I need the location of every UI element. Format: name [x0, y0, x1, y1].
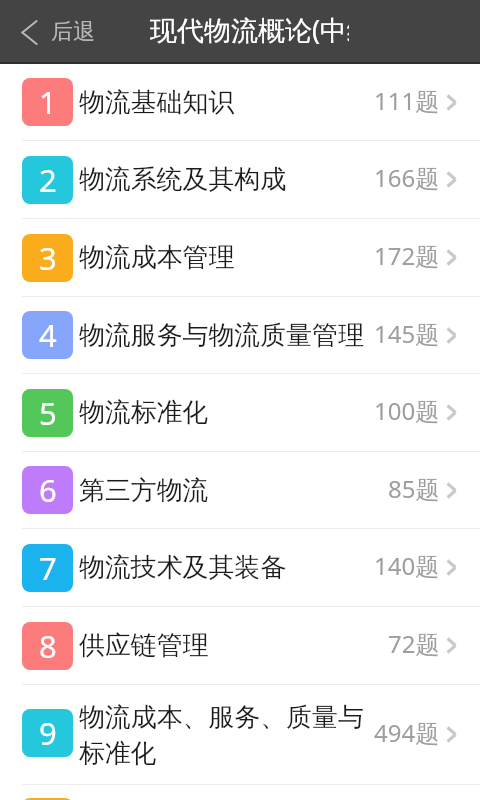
staticText: 现代物流概论(中级)职业资格培训教材 — [150, 11, 349, 48]
staticText: 物流标准化 — [79, 396, 209, 429]
other: Open chapter — [446, 559, 457, 576]
staticText: 85题 — [388, 472, 440, 505]
button[interactable]: 2 — [0, 141, 480, 219]
button[interactable]: 9 — [0, 685, 480, 785]
staticText: 100题 — [374, 394, 440, 427]
other: Back — [21, 20, 38, 45]
staticText: 172题 — [374, 239, 440, 272]
other: Open chapter — [446, 404, 457, 421]
staticText: 111题 — [374, 84, 440, 117]
staticText: 第三方物流 — [79, 474, 209, 507]
staticText: 物流基础知识 — [79, 86, 235, 119]
staticText: 3 — [39, 237, 57, 279]
staticText: 5 — [39, 392, 57, 434]
staticText: 物流成本、服务、质量与标准化 — [79, 701, 371, 769]
other: Open chapter — [446, 637, 457, 654]
other: Open chapter — [446, 171, 457, 188]
button[interactable]: Back — [0, 0, 107, 64]
staticText: 4 — [39, 314, 57, 356]
other: Open chapter — [446, 327, 457, 344]
button[interactable]: 5 — [0, 374, 480, 452]
staticText: 140题 — [374, 549, 440, 582]
button[interactable]: 7 — [0, 529, 480, 607]
button[interactable]: 6 — [0, 452, 480, 529]
staticText: 145题 — [374, 317, 440, 350]
button[interactable]: 3 — [0, 219, 480, 297]
staticText: 166题 — [374, 161, 440, 194]
staticText: 1 — [39, 81, 57, 123]
other: Open chapter — [446, 94, 457, 111]
button[interactable]: 8 — [0, 607, 480, 685]
other: Open chapter — [446, 482, 457, 499]
staticText: 7 — [39, 547, 57, 589]
staticText: 供应链管理 — [79, 629, 209, 662]
staticText: 494题 — [374, 716, 440, 749]
other: Open chapter — [446, 726, 457, 743]
button[interactable]: 1 — [0, 64, 480, 141]
staticText: 后退 — [51, 18, 95, 46]
staticText: 72题 — [388, 627, 440, 660]
staticText: 物流成本管理 — [79, 241, 235, 274]
staticText: 2 — [39, 159, 57, 201]
staticText: 物流服务与物流质量管理 — [79, 319, 364, 352]
staticText: 物流技术及其装备 — [79, 551, 287, 584]
other: Open chapter — [446, 249, 457, 266]
button[interactable]: 10 — [0, 785, 480, 800]
staticText: 6 — [39, 469, 57, 511]
staticText: 物流系统及其构成 — [79, 163, 287, 196]
staticText: 8 — [39, 625, 57, 667]
button[interactable]: 4 — [0, 297, 480, 374]
staticText: 9 — [39, 712, 57, 754]
